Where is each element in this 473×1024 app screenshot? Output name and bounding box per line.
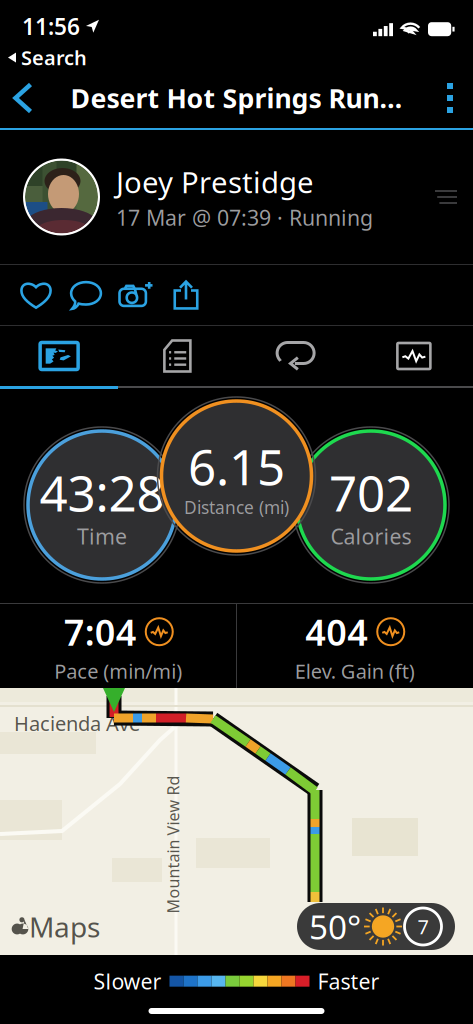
staticText: Desert Hot Springs Run… xyxy=(70,80,402,116)
staticText: 6.15 xyxy=(188,433,285,499)
staticText: Mountain View Rd xyxy=(104,834,242,855)
staticText: 17 Mar @ 07:39 · Running xyxy=(116,203,373,232)
staticText: Slower xyxy=(93,967,161,995)
staticText: 702 xyxy=(329,460,413,525)
button[interactable]: Charts xyxy=(355,326,473,386)
staticText: 7 xyxy=(417,913,428,940)
staticText: Elev. Gain (ft) xyxy=(295,658,415,684)
staticText: 11:56 xyxy=(22,11,80,41)
button[interactable]: Details xyxy=(118,326,236,386)
button[interactable]: Like xyxy=(11,265,61,325)
staticText: 404 xyxy=(305,608,368,656)
staticText: Time xyxy=(77,522,127,550)
button[interactable]: Share xyxy=(161,265,211,325)
staticText: Distance (mi) xyxy=(184,496,289,519)
button[interactable]: More options xyxy=(427,71,473,125)
button[interactable]: Map xyxy=(0,326,118,386)
staticText: Search xyxy=(21,44,87,71)
staticText: 50° xyxy=(309,904,361,949)
button[interactable]: Joey Prestidge xyxy=(0,130,473,264)
button[interactable]: Comment xyxy=(61,265,111,325)
staticText: Faster xyxy=(317,967,379,995)
staticText: Calories xyxy=(330,522,411,550)
button[interactable]: Back xyxy=(0,71,46,125)
staticText: Pace (min/mi) xyxy=(54,658,182,684)
button[interactable]: Add photo xyxy=(111,265,161,325)
staticText: 43:28 xyxy=(39,460,164,525)
staticText: Hacienda Ave xyxy=(14,710,140,737)
button[interactable]: Laps xyxy=(236,326,355,386)
staticText: Maps xyxy=(29,908,100,945)
staticText: 7:04 xyxy=(64,608,137,656)
staticText: Joey Prestidge xyxy=(116,162,314,201)
